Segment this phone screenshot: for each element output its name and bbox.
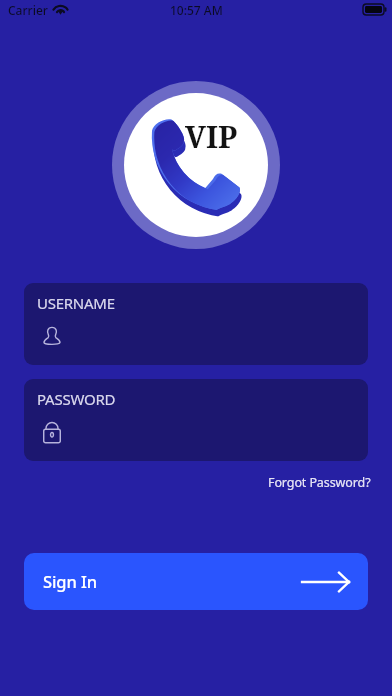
button[interactable]: Sign In — [24, 553, 368, 610]
button[interactable]: Forgot Password? — [248, 470, 392, 495]
button[interactable]: Username — [24, 283, 368, 365]
staticText: Forgot Password? — [268, 474, 371, 491]
staticText: Sign In — [43, 570, 97, 592]
staticText: 10:57 AM — [170, 2, 223, 18]
staticText: VIP — [185, 116, 238, 157]
button[interactable]: Password — [24, 379, 368, 461]
staticText: USERNAME — [37, 293, 115, 313]
staticText: Carrier — [8, 2, 48, 18]
staticText: PASSWORD — [37, 389, 116, 409]
